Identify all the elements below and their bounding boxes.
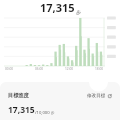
staticText: 目標進度 [8,92,29,99]
staticText: 17,315 [8,104,35,116]
button[interactable]: 修改目標 [87,93,112,99]
staticText: /10,000 [35,110,50,116]
staticText: 修改目標 [87,93,106,99]
staticText: 17,315 [40,0,75,15]
staticText: 18:00 [95,67,104,71]
staticText: 06:00 [35,67,44,71]
staticText: 12:00 [65,67,74,71]
staticText: 步 [76,9,81,15]
staticText: 步 [51,111,55,116]
staticText: 00:00 [5,67,14,71]
button[interactable]: 17,315 [40,0,81,15]
button[interactable]: 目標進度 [8,92,29,99]
